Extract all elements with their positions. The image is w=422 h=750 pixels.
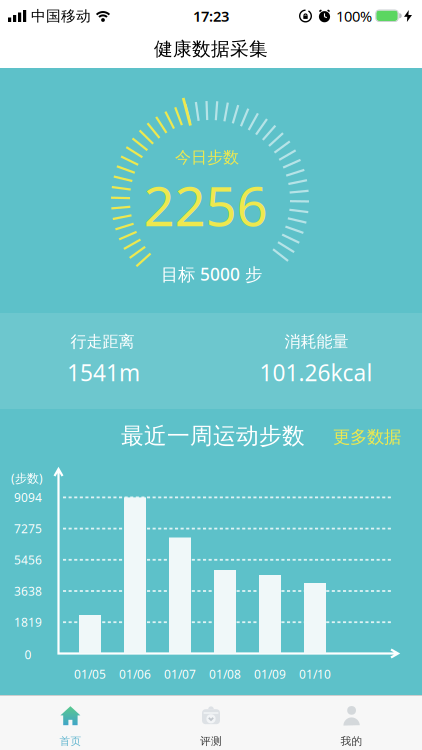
- staticText: 01/09: [254, 666, 286, 682]
- staticText: 行走距离: [70, 332, 134, 351]
- staticText: 3638: [14, 583, 42, 599]
- staticText: 首页: [59, 735, 81, 748]
- staticText: 1819: [14, 614, 42, 630]
- staticText: 今日步数: [175, 148, 239, 167]
- staticText: 健康数据采集: [154, 37, 268, 60]
- staticText: (步数): [11, 470, 43, 486]
- staticText: 5456: [14, 552, 42, 568]
- staticText: 100%: [336, 6, 372, 26]
- button[interactable]: 首页: [0, 696, 141, 750]
- staticText: 2256: [143, 169, 267, 241]
- button[interactable]: 更多数据: [333, 426, 401, 448]
- staticText: 目标 5000 步: [161, 262, 262, 285]
- staticText: 评测: [200, 735, 222, 748]
- staticText: 1541m: [67, 357, 140, 387]
- button[interactable]: 评测: [141, 696, 281, 750]
- staticText: 消耗能量: [284, 332, 348, 351]
- staticText: 0: [24, 646, 31, 662]
- staticText: 中国移动: [31, 7, 91, 25]
- staticText: 01/06: [119, 666, 151, 682]
- staticText: 01/05: [74, 666, 106, 682]
- staticText: 我的: [341, 735, 363, 748]
- staticText: 101.26kcal: [259, 357, 372, 387]
- button[interactable]: 我的: [281, 696, 422, 750]
- staticText: 更多数据: [333, 426, 401, 448]
- staticText: 9094: [14, 489, 42, 505]
- staticText: 最近一周运动步数: [121, 422, 305, 450]
- staticText: 01/10: [299, 666, 331, 682]
- staticText: 7275: [14, 521, 42, 536]
- staticText: 01/08: [209, 666, 241, 682]
- staticText: 01/07: [164, 666, 196, 682]
- staticText: 17:23: [193, 6, 229, 26]
